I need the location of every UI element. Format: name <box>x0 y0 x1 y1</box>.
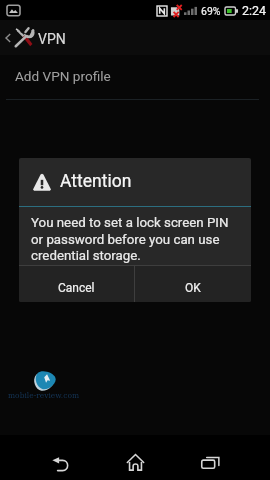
staticText: 2:24 <box>242 3 267 18</box>
staticText: Cancel <box>58 281 95 295</box>
button[interactable]: Add VPN profile <box>0 60 270 100</box>
button[interactable]: Recent apps <box>185 442 235 480</box>
button[interactable]: Back <box>35 442 85 480</box>
staticText: Attention <box>60 171 132 192</box>
staticText: Add VPN profile <box>15 68 111 84</box>
staticText: 69% <box>201 5 221 17</box>
staticText: mobile-review.com <box>8 391 80 400</box>
button[interactable]: Navigate up <box>0 20 270 55</box>
other: Navigate up <box>3 31 13 45</box>
button[interactable]: Home <box>110 442 160 480</box>
staticText: OK <box>185 281 201 295</box>
staticText: VPN <box>38 31 66 47</box>
button[interactable]: Cancel <box>19 266 134 302</box>
staticText: You need to set a lock screen PIN or pas… <box>31 215 239 263</box>
button[interactable]: OK <box>135 266 251 302</box>
